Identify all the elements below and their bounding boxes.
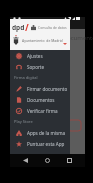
button[interactable]: Apps de la misma entidad: [10, 127, 70, 138]
staticText: Documentos firmados: [27, 97, 70, 103]
button[interactable]: Firmar documento: [10, 83, 70, 94]
button[interactable]: Puntuar esta App: [10, 138, 70, 149]
button[interactable]: Back: [19, 154, 32, 167]
staticText: Puntuar esta App: [27, 141, 65, 147]
staticText: Ayuntamiento de Madrid: [22, 38, 63, 43]
staticText: Firma digital: [14, 75, 38, 80]
button[interactable]: Soporte: [10, 61, 70, 72]
button[interactable]: dpd: [10, 19, 70, 50]
button[interactable]: Documentos firmados: [10, 94, 70, 105]
staticText: dpd: [12, 23, 25, 32]
button[interactable]: Verificar firma: [10, 105, 70, 116]
button[interactable]: Recent apps: [63, 154, 76, 167]
staticText: Verificar firma: [27, 108, 58, 114]
button[interactable]: Ajustes: [10, 50, 70, 61]
button[interactable]: Nuevo: [68, 120, 81, 131]
staticText: Apps de la misma entidad: [27, 130, 70, 136]
staticText: Soporte: [27, 64, 45, 70]
staticText: Play Store: [14, 119, 33, 124]
staticText: Ajustes: [27, 53, 43, 59]
button[interactable]: Home: [41, 154, 54, 167]
staticText: Mis documentos: [52, 34, 93, 42]
staticText: Firmar documento: [27, 86, 68, 92]
staticText: Consulta de datos: [38, 25, 67, 30]
